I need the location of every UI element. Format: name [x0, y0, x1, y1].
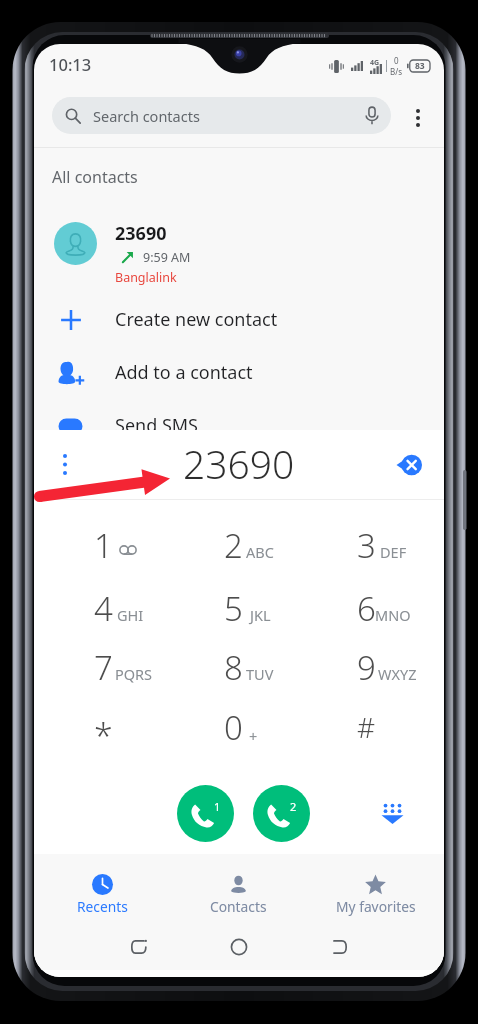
button[interactable]: Create new contact — [34, 293, 444, 346]
staticText: GHI — [117, 605, 144, 625]
button[interactable]: # — [306, 698, 426, 758]
button[interactable]: More options — [403, 98, 433, 138]
staticText: 7 — [94, 645, 113, 690]
button[interactable]: 7 — [43, 638, 163, 698]
staticText: ABC — [246, 542, 274, 562]
button[interactable]: Call with SIM 1 — [177, 785, 234, 842]
staticText: 0 — [224, 705, 243, 750]
button[interactable]: 2 — [173, 516, 293, 576]
staticText: 1 — [94, 523, 113, 568]
staticText: 23690 — [115, 221, 167, 246]
button[interactable]: 3 — [306, 516, 426, 576]
button[interactable]: My favorites — [307, 854, 444, 924]
button[interactable]: 4 — [43, 579, 163, 639]
staticText: Send SMS — [115, 413, 198, 438]
staticText: B/s — [390, 66, 403, 77]
staticText: Search contacts — [93, 106, 200, 126]
button[interactable]: Contacts — [170, 854, 307, 924]
staticText: All contacts — [52, 166, 138, 188]
staticText: 10:13 — [49, 53, 92, 75]
button[interactable]: Back — [107, 924, 171, 970]
staticText: TUV — [246, 664, 274, 684]
button[interactable]: Recent apps — [307, 924, 371, 970]
staticText: Add to a contact — [115, 360, 253, 385]
staticText: My favorites — [336, 897, 416, 916]
staticText: 9:59 AM — [143, 249, 191, 266]
staticText: 2 — [224, 523, 243, 568]
button[interactable]: Search contacts — [52, 97, 391, 134]
staticText: + — [249, 726, 258, 746]
button[interactable]: 0 — [173, 698, 293, 758]
button[interactable]: Backspace — [392, 448, 426, 482]
staticText: Recents — [77, 897, 128, 916]
staticText: JKL — [250, 605, 271, 625]
staticText: 6 — [357, 586, 376, 631]
button[interactable]: 23690 — [34, 213, 444, 293]
button[interactable]: Call with SIM 2 — [253, 785, 310, 842]
staticText: 4G — [370, 58, 380, 68]
staticText: 0 — [394, 55, 399, 66]
staticText: 83 — [415, 60, 425, 72]
staticText: Contacts — [210, 897, 267, 916]
staticText: 4 — [94, 586, 113, 631]
staticText: 5 — [224, 586, 243, 631]
button[interactable]: Hide keypad — [375, 796, 409, 830]
staticText: 23690 — [183, 437, 295, 490]
staticText: # — [357, 708, 376, 746]
staticText: 9 — [357, 645, 376, 690]
staticText: 3 — [357, 523, 376, 568]
staticText: 1 — [214, 799, 221, 814]
staticText: 8 — [224, 645, 243, 690]
button[interactable]: 6 — [306, 579, 426, 639]
staticText: MNO — [375, 605, 411, 625]
staticText: * — [94, 713, 113, 759]
button[interactable]: Send SMS — [34, 399, 444, 452]
staticText: WXYZ — [378, 664, 417, 684]
staticText: PQRS — [115, 664, 153, 684]
staticText: 2 — [290, 799, 297, 814]
staticText: DEF — [380, 542, 407, 562]
button[interactable]: 1 — [43, 516, 163, 576]
button[interactable]: 5 — [173, 579, 293, 639]
button[interactable]: Recents — [34, 854, 170, 924]
staticText: Create new contact — [115, 307, 278, 332]
button[interactable]: Add to a contact — [34, 346, 444, 399]
button[interactable]: 9 — [306, 638, 426, 698]
button[interactable]: Home — [207, 924, 271, 970]
staticText: Banglalink — [115, 269, 177, 286]
button[interactable]: Dialpad options — [34, 430, 96, 499]
button[interactable]: 8 — [173, 638, 293, 698]
button[interactable]: * — [43, 698, 163, 758]
